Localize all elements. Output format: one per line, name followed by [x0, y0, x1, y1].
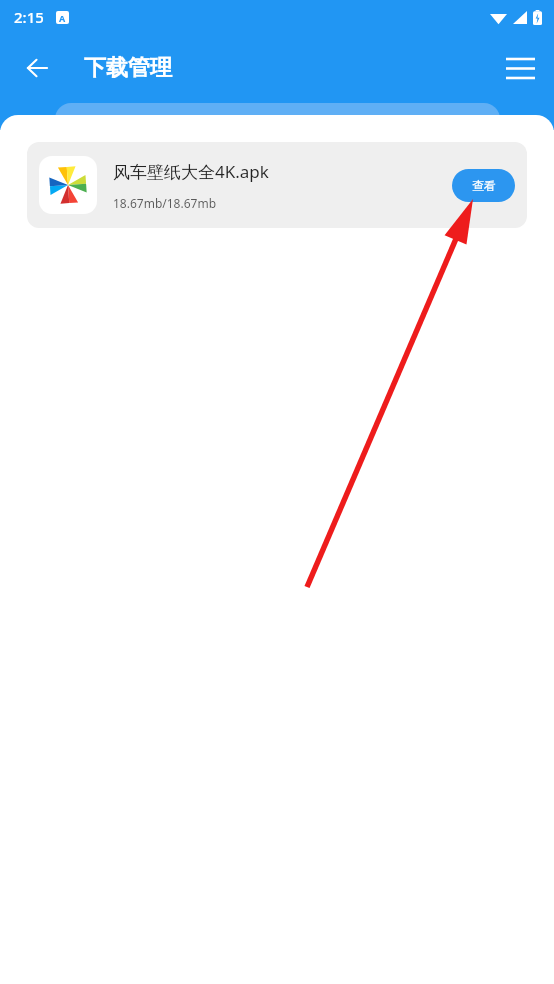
staticText: 下载管理: [84, 54, 172, 82]
button[interactable]: 风车壁纸大全4K.apk: [27, 142, 527, 228]
button[interactable]: Back: [13, 44, 61, 92]
staticText: 2:15: [14, 7, 44, 27]
staticText: 查看: [472, 178, 496, 193]
staticText: A: [59, 12, 66, 24]
button[interactable]: 查看: [452, 169, 515, 202]
button[interactable]: Menu: [496, 44, 544, 92]
staticText: 风车壁纸大全4K.apk: [113, 160, 269, 183]
staticText: 18.67mb/18.67mb: [113, 195, 217, 211]
